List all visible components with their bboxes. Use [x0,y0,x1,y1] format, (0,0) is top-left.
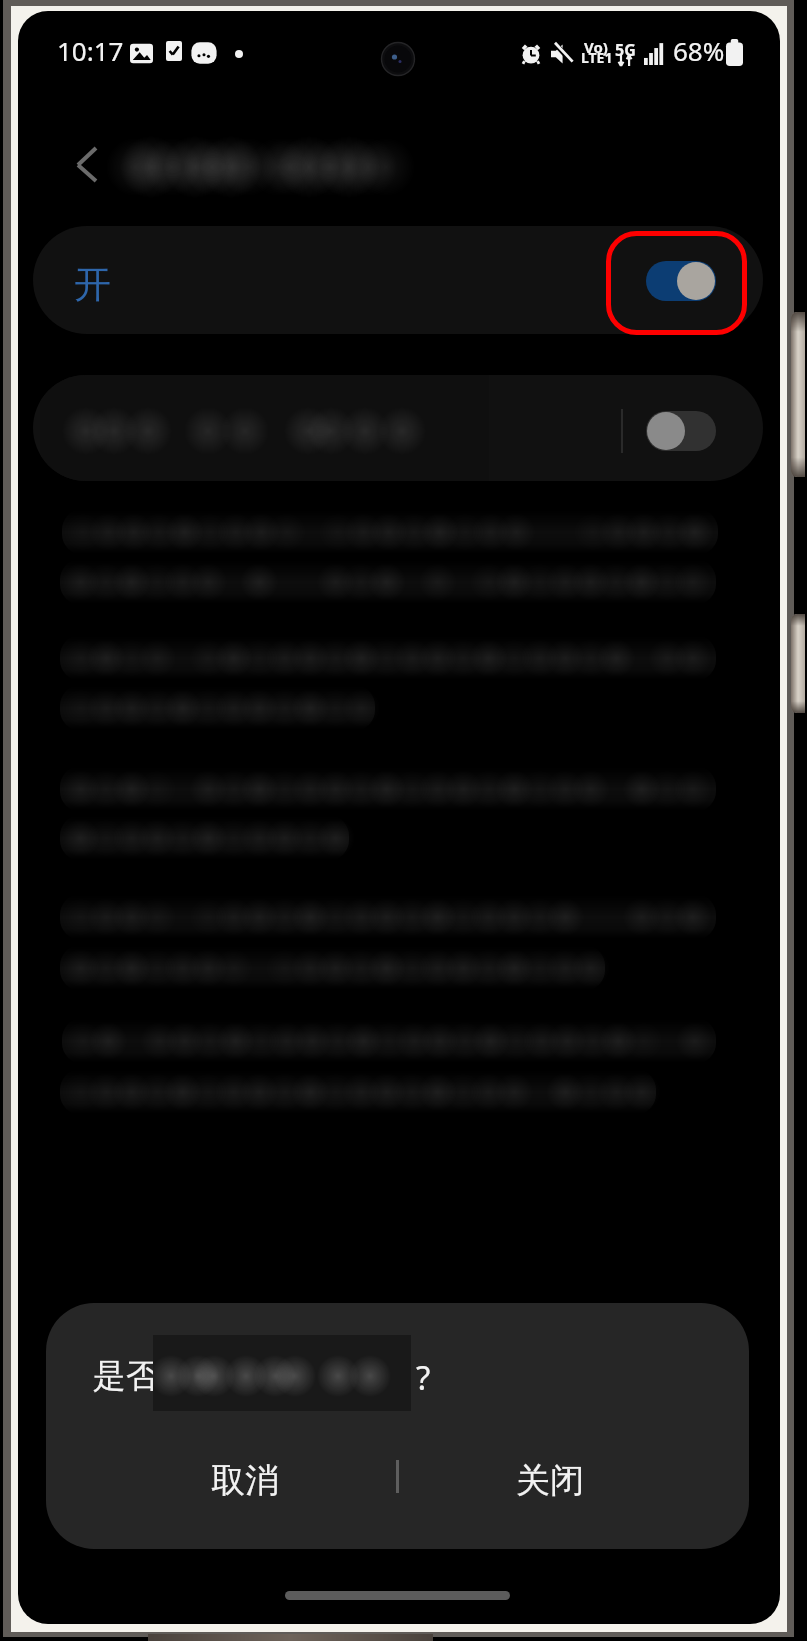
button[interactable]: Toggle off [33,375,763,481]
staticText: 10:17 [57,33,124,68]
button[interactable]: Toggle on [646,261,716,301]
button[interactable]: 取消 [150,1440,340,1520]
staticText: LTE1 [581,48,613,67]
button[interactable]: Toggle off [646,411,716,451]
staticText: Vo) [584,37,608,57]
staticText: 是否 [93,1355,159,1397]
staticText: 5G [615,39,636,61]
button[interactable]: 开 [33,226,763,334]
staticText: 开 [74,261,111,308]
staticText: 68% [673,33,725,68]
staticText: 取消 [211,1459,279,1502]
staticText: ? [416,1355,431,1400]
button[interactable]: Back [52,132,120,200]
button[interactable]: 关闭 [455,1440,645,1520]
staticText: 关闭 [516,1459,584,1502]
